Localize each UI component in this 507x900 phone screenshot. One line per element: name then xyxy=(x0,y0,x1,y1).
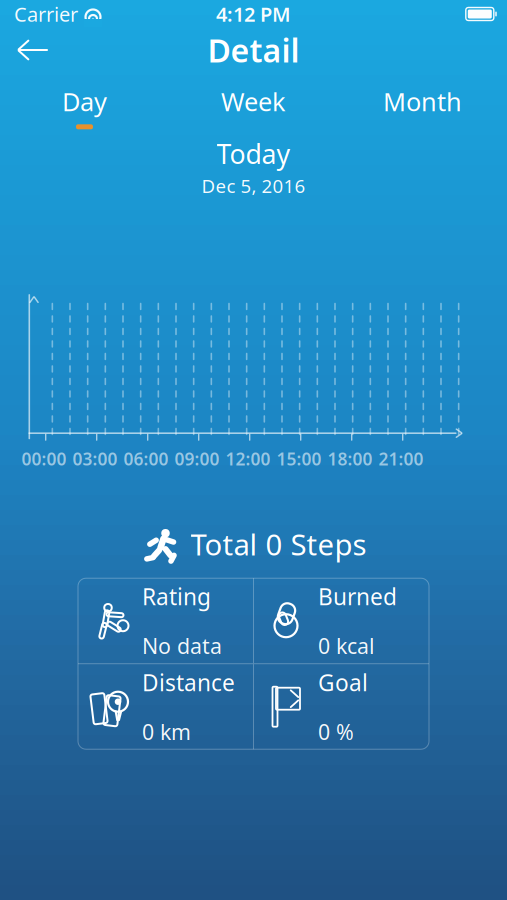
staticText: Distance xyxy=(142,667,235,698)
staticText: Day xyxy=(62,85,107,118)
staticText: Week xyxy=(221,85,286,118)
button[interactable]: Distance xyxy=(78,664,253,749)
staticText: 09:00 xyxy=(174,447,219,470)
button[interactable]: Back xyxy=(6,28,60,72)
staticText: Detail xyxy=(207,29,299,71)
staticText: Dec 5, 2016 xyxy=(201,173,305,198)
staticText: 00:00 xyxy=(21,447,66,470)
staticText: 18:00 xyxy=(327,447,372,470)
staticText: 15:00 xyxy=(276,447,321,470)
staticText: No data xyxy=(142,632,222,660)
staticText: 0 kcal xyxy=(318,632,375,660)
staticText: 0 km xyxy=(142,718,191,746)
staticText: Rating xyxy=(142,581,211,612)
staticText: 4:12 PM xyxy=(216,1,291,27)
staticText: Month xyxy=(383,85,462,118)
staticText: Burned xyxy=(318,581,397,612)
button[interactable]: Day xyxy=(0,84,169,130)
staticText: 06:00 xyxy=(123,447,168,470)
staticText: 12:00 xyxy=(225,447,270,470)
button[interactable]: Rating xyxy=(78,578,253,663)
button[interactable]: Goal xyxy=(254,664,429,749)
staticText: 03:00 xyxy=(72,447,117,470)
staticText: Total 0 Steps xyxy=(190,525,366,564)
staticText: 21:00 xyxy=(378,447,423,470)
button[interactable]: Month xyxy=(338,84,507,130)
staticText: Goal xyxy=(318,667,368,698)
staticText: 0 % xyxy=(318,718,354,746)
button[interactable]: Week xyxy=(169,84,338,130)
staticText: Carrier xyxy=(14,1,78,27)
button[interactable]: Burned xyxy=(254,578,429,663)
staticText: Today xyxy=(216,136,290,171)
